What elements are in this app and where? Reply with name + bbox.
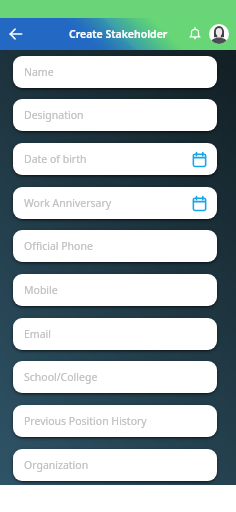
button[interactable]: Previous Position History xyxy=(13,405,217,437)
button[interactable]: Official Phone xyxy=(13,230,217,262)
button[interactable]: Name xyxy=(13,56,217,88)
button[interactable]: Date of birth xyxy=(13,143,217,175)
button[interactable]: Notifications xyxy=(187,26,203,42)
staticText: Email xyxy=(24,327,207,341)
staticText: Previous Position History xyxy=(24,414,207,428)
staticText: Create Stakeholder xyxy=(69,27,168,41)
button[interactable]: Email xyxy=(13,318,217,350)
staticText: Designation xyxy=(24,108,207,122)
button[interactable]: Organization xyxy=(13,449,217,481)
button[interactable]: School/College xyxy=(13,361,217,393)
staticText: Official Phone xyxy=(24,239,207,253)
button[interactable]: Profile xyxy=(209,24,229,44)
staticText: Organization xyxy=(24,458,207,472)
button[interactable]: Mobile xyxy=(13,274,217,306)
staticText: School/College xyxy=(24,370,207,384)
staticText: Name xyxy=(24,65,207,79)
button[interactable]: Designation xyxy=(13,99,217,131)
button[interactable]: Back xyxy=(7,25,25,43)
staticText: Date of birth xyxy=(24,152,192,166)
staticText: Mobile xyxy=(24,283,207,297)
staticText: Work Anniversary xyxy=(24,196,192,210)
button[interactable]: Work Anniversary xyxy=(13,187,217,219)
